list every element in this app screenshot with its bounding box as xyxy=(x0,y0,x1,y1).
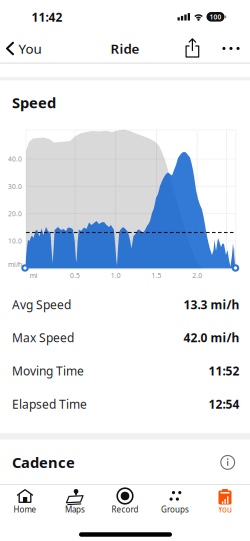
button[interactable]: Back xyxy=(5,35,57,61)
button[interactable]: Home xyxy=(0,485,50,515)
staticText: Home xyxy=(13,504,36,515)
button[interactable]: Groups xyxy=(150,485,200,515)
staticText: Maps xyxy=(65,504,85,515)
staticText: mi xyxy=(30,271,38,280)
staticText: 100 xyxy=(209,12,221,21)
staticText: 13.3 mi/h xyxy=(183,296,239,312)
staticText: Cadence xyxy=(12,453,75,472)
staticText: 20.0 xyxy=(8,209,22,218)
staticText: 30.0 xyxy=(8,182,22,191)
button[interactable]: You xyxy=(200,485,250,515)
staticText: 40.0 xyxy=(8,155,22,163)
staticText: Elapsed Time xyxy=(12,396,87,412)
button[interactable]: Record xyxy=(100,485,150,515)
staticText: You xyxy=(218,504,232,515)
staticText: Ride xyxy=(110,40,139,57)
staticText: 11:42 xyxy=(31,9,62,25)
staticText: mi/h xyxy=(8,260,22,269)
staticText: Groups xyxy=(161,504,189,515)
button[interactable]: Share xyxy=(182,36,202,59)
staticText: Max Speed xyxy=(12,329,74,345)
staticText: 12:54 xyxy=(208,396,239,412)
button[interactable]: About cadence xyxy=(220,454,236,470)
staticText: Moving Time xyxy=(12,363,84,379)
button[interactable]: Maps xyxy=(50,485,100,515)
staticText: Speed xyxy=(12,93,56,112)
staticText: 1.0 xyxy=(111,271,121,280)
staticText: 10.0 xyxy=(8,237,22,245)
staticText: 1.5 xyxy=(151,271,161,280)
staticText: 2.0 xyxy=(192,271,202,280)
staticText: 42.0 mi/h xyxy=(183,329,239,345)
staticText: 11:52 xyxy=(208,363,239,379)
staticText: Record xyxy=(111,504,138,515)
staticText: You xyxy=(18,40,41,57)
staticText: Avg Speed xyxy=(12,296,71,312)
staticText: 0.5 xyxy=(70,271,80,280)
button[interactable]: More options xyxy=(220,43,242,53)
